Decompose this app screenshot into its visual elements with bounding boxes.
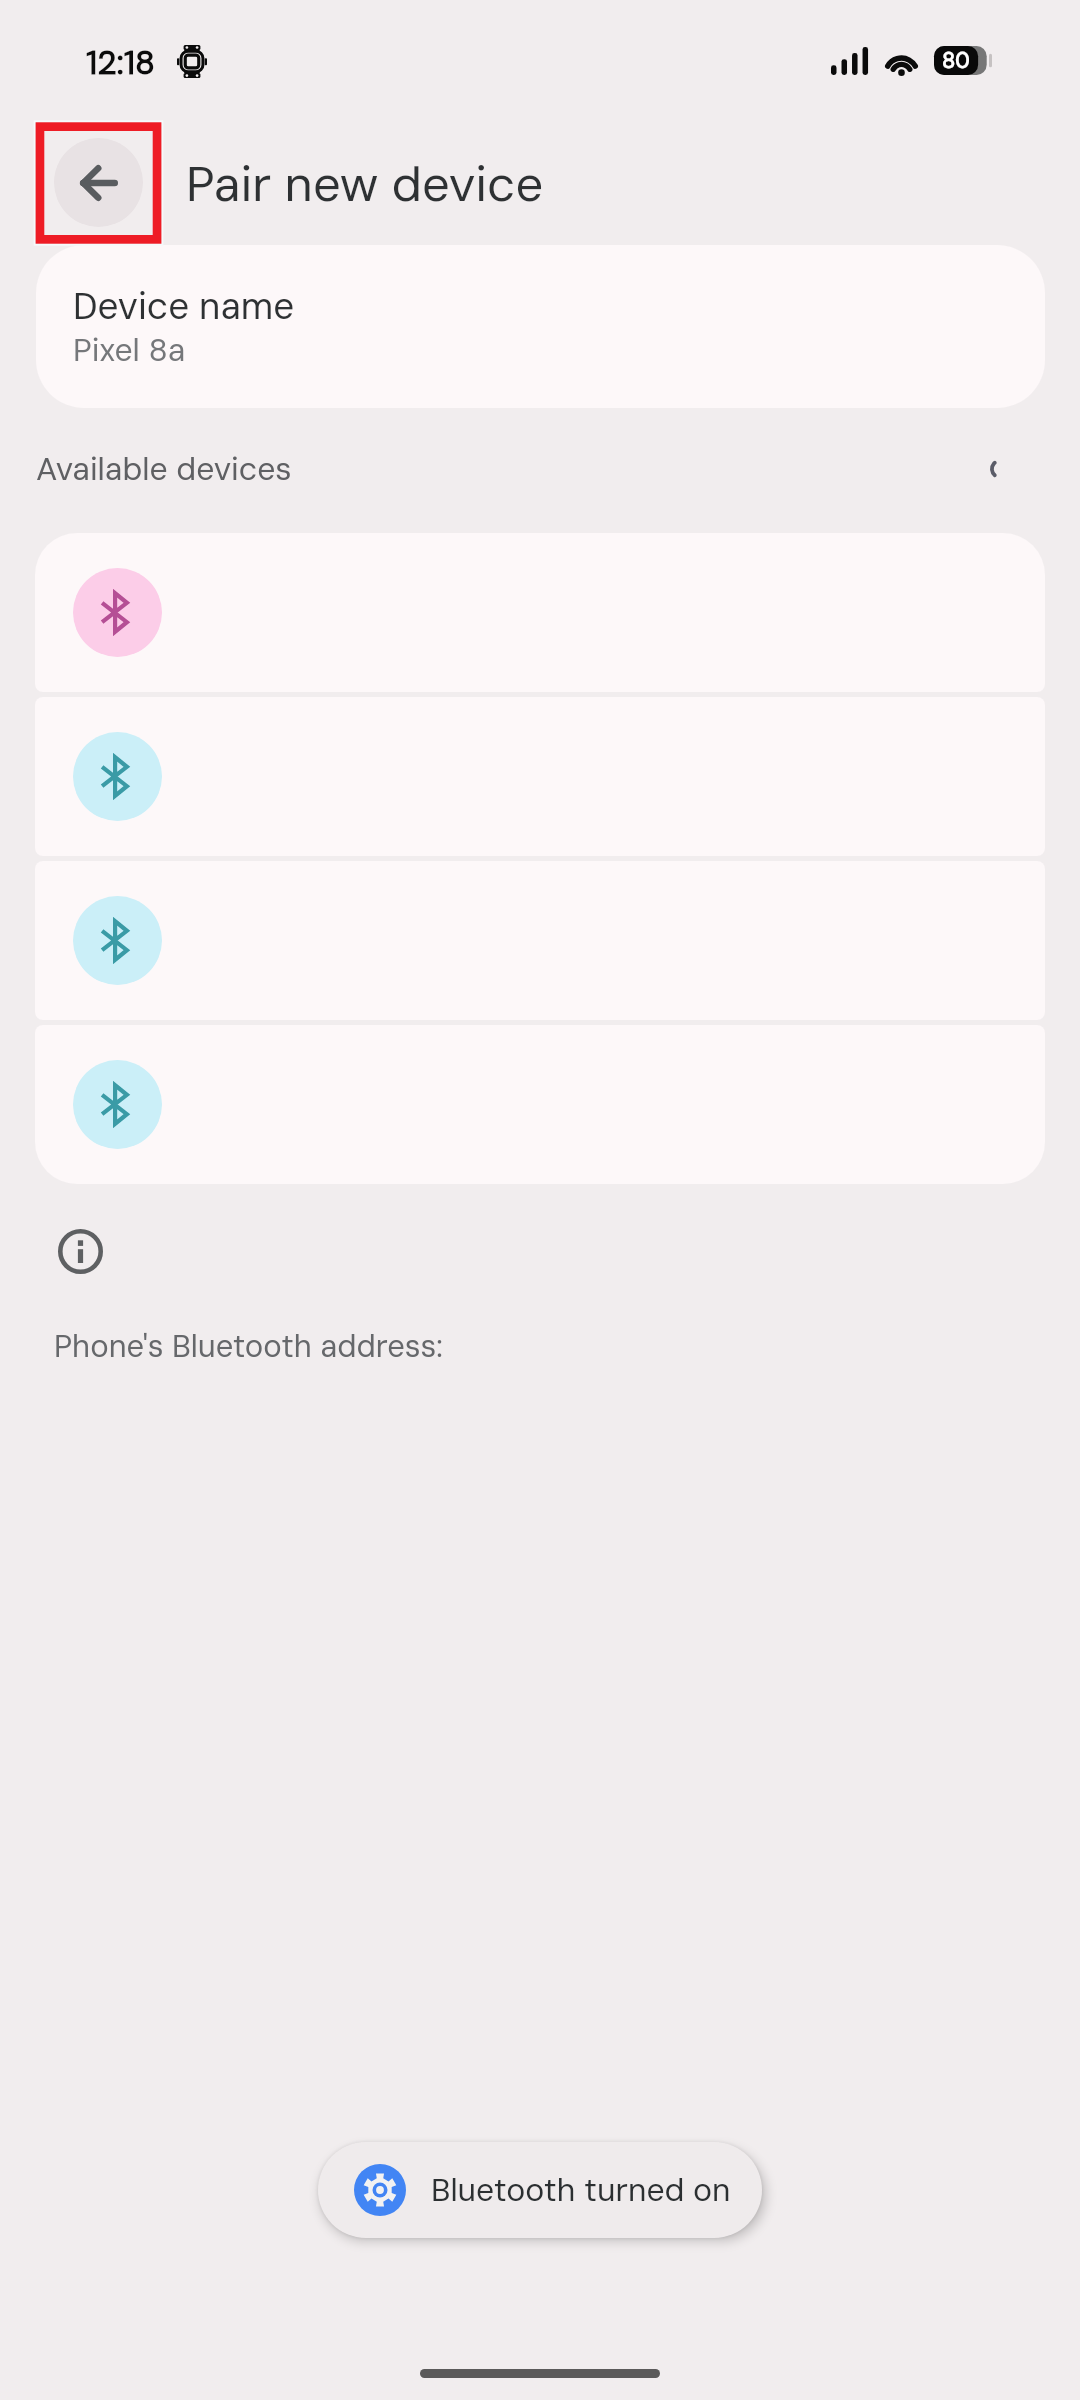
- button[interactable]: [35, 1025, 1045, 1184]
- staticText: 80: [942, 46, 970, 75]
- staticText: Pixel 8a: [73, 329, 186, 371]
- button[interactable]: [35, 861, 1045, 1020]
- staticText: 12:18: [86, 41, 155, 84]
- button[interactable]: Bluetooth turned on: [318, 2142, 762, 2238]
- staticText: Bluetooth turned on: [431, 2169, 731, 2211]
- staticText: Phone's Bluetooth address:: [54, 1326, 443, 1366]
- button[interactable]: Back: [54, 138, 143, 227]
- staticText: Available devices: [36, 448, 292, 490]
- staticText: Device name: [73, 282, 295, 330]
- button[interactable]: Device name: [36, 245, 1045, 408]
- button[interactable]: [35, 533, 1045, 692]
- staticText: Pair new device: [186, 152, 544, 216]
- button[interactable]: [35, 697, 1045, 856]
- button[interactable]: Info: [58, 1229, 103, 1274]
